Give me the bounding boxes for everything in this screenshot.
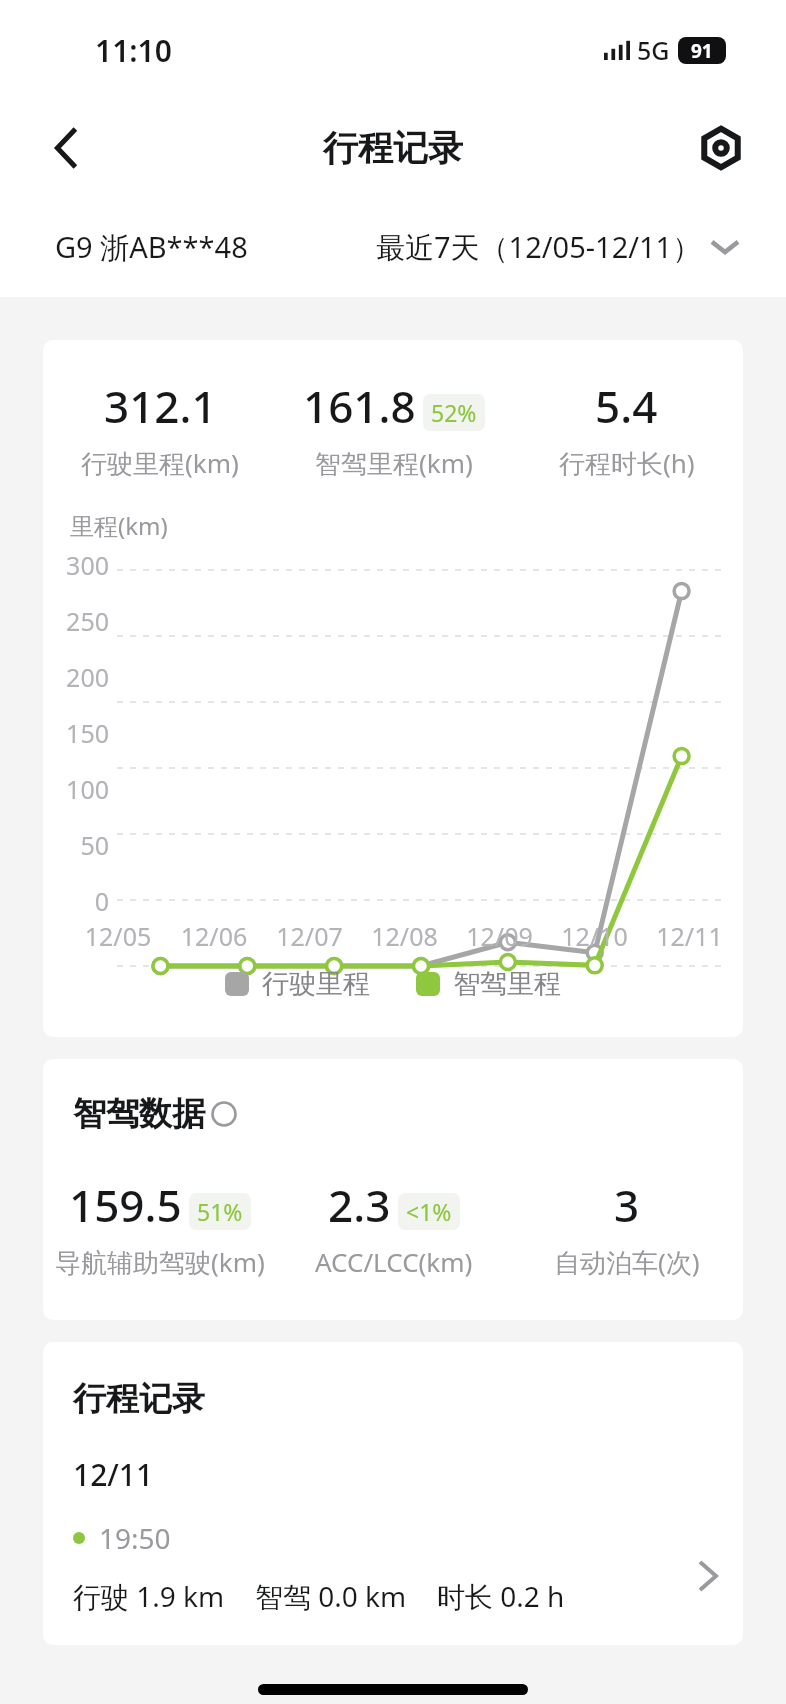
staticText: 时长 0.2 h xyxy=(437,1577,565,1615)
staticText: 312.1 xyxy=(104,376,217,436)
staticText: 最近7天（12/05-12/11） xyxy=(376,227,702,267)
staticText: 250 xyxy=(43,604,109,638)
staticText: 12/06 xyxy=(166,919,262,953)
staticText: 行程记录 xyxy=(323,126,463,170)
staticText: 51% xyxy=(197,1196,243,1227)
button[interactable]: 最近7天（12/05-12/11） xyxy=(376,227,738,267)
staticText: 159.5 xyxy=(69,1175,182,1235)
staticText: 100 xyxy=(43,772,109,806)
staticText: 行驶 1.9 km xyxy=(73,1577,225,1615)
staticText: 19:50 xyxy=(99,1519,171,1557)
staticText: 行程时长(h) xyxy=(559,445,695,481)
staticText: 行驶里程(km) xyxy=(81,445,239,481)
staticText: 300 xyxy=(43,548,109,582)
staticText: 200 xyxy=(43,660,109,694)
staticText: G9 浙AB***48 xyxy=(55,227,248,267)
button[interactable]: 19:50 xyxy=(43,1519,743,1615)
button[interactable]: 行驶里程 xyxy=(225,967,370,1001)
staticText: 12/09 xyxy=(452,919,547,953)
staticText: 智驾里程 xyxy=(453,967,561,1001)
staticText: 智驾数据 xyxy=(73,1093,205,1135)
button[interactable]: 智驾里程 xyxy=(416,967,561,1001)
staticText: 3 xyxy=(614,1175,640,1235)
button[interactable]: 智驾数据 xyxy=(73,1093,237,1135)
staticText: 里程(km) xyxy=(70,509,168,542)
staticText: 150 xyxy=(43,716,109,750)
staticText: 161.8 xyxy=(303,376,416,436)
staticText: 行驶里程 xyxy=(262,967,370,1001)
staticText: 12/08 xyxy=(357,919,452,953)
staticText: 50 xyxy=(43,828,109,862)
staticText: 导航辅助驾驶(km) xyxy=(55,1244,265,1280)
staticText: 2.3 xyxy=(328,1175,391,1235)
staticText: 12/07 xyxy=(262,919,357,953)
staticText: 自动泊车(次) xyxy=(554,1244,700,1280)
staticText: 12/05 xyxy=(70,919,166,953)
button[interactable]: Back xyxy=(40,121,94,175)
staticText: 12/10 xyxy=(547,919,642,953)
staticText: 12/11 xyxy=(73,1454,154,1495)
staticText: 91 xyxy=(691,38,713,64)
staticText: 行程记录 xyxy=(73,1378,205,1420)
staticText: 52% xyxy=(431,397,477,428)
staticText: <1% xyxy=(406,1196,452,1227)
button[interactable]: Settings xyxy=(694,121,748,175)
staticText: 0 xyxy=(43,884,109,918)
staticText: 智驾 0.0 km xyxy=(255,1577,407,1615)
staticText: 5G xyxy=(637,33,670,67)
staticText: 5.4 xyxy=(595,376,658,436)
staticText: 智驾里程(km) xyxy=(315,445,473,481)
staticText: 12/11 xyxy=(642,919,737,953)
staticText: 11:10 xyxy=(95,30,172,71)
staticText: ACC/LCC(km) xyxy=(315,1244,473,1279)
